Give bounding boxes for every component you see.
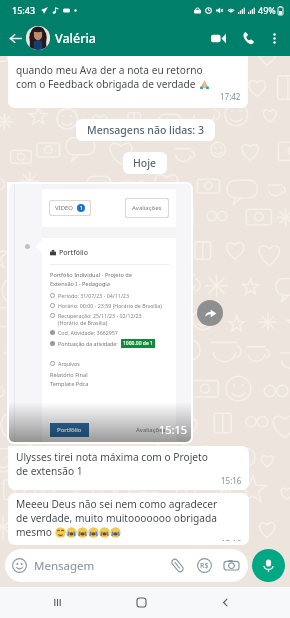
other: Camera (224, 558, 239, 573)
button[interactable]: Forward (197, 300, 223, 326)
button[interactable]: Ulysses tirei nota máxima com o Projeto … (8, 446, 249, 490)
staticText: Mensagem (34, 558, 95, 574)
staticText: 1 (80, 205, 83, 212)
staticText: Portfólio (59, 248, 89, 258)
staticText: Ulysses tirei nota máxima com o Projeto … (16, 450, 208, 478)
button[interactable]: quando meu Ava der a nota eu retorno (8, 56, 248, 108)
staticText: Período: 31/07/23 - 04/11/23 (58, 292, 129, 299)
other: Emoji (12, 558, 27, 573)
staticText: 15:15 (159, 422, 188, 437)
staticText: 1000.00 de 1 (123, 340, 153, 347)
staticText: VÍDEO (55, 204, 74, 212)
button[interactable]: Video call (205, 25, 231, 51)
staticText: Relatório Final Template Pdca (50, 371, 89, 387)
other: Payment (197, 558, 212, 573)
staticText: Cod. Atividade: 3662957 (58, 329, 118, 336)
staticText: Mensagens não lidas: 3 (87, 123, 204, 137)
staticText: Avaliações (132, 204, 162, 212)
staticText: 49% (258, 4, 276, 16)
button[interactable]: VÍDEO (7, 182, 193, 444)
button[interactable]: Back (4, 27, 26, 49)
staticText: com o Feedback obrigada de verdade (16, 77, 199, 91)
staticText: 15:16 (221, 538, 242, 541)
staticText: Pontuação da atividade: (58, 340, 118, 347)
button[interactable]: Hoje (123, 152, 167, 174)
staticText: 17:42 (220, 91, 241, 101)
button[interactable]: Home (123, 587, 159, 618)
button[interactable]: More options (263, 27, 285, 49)
button[interactable]: Back (207, 587, 243, 618)
staticText: quando meu Ava der a nota eu retorno (16, 63, 203, 77)
staticText: Horário: 00:00 - 23:59 (Horário de Brasí… (58, 302, 162, 309)
staticText: 15:43 (12, 4, 36, 16)
staticText: Recuperação: 25/11/23 - 02/12/23 (Horári… (58, 312, 142, 326)
button[interactable]: Voice message (252, 549, 285, 582)
staticText: Hoje (133, 156, 157, 170)
staticText: Valéria (55, 30, 96, 47)
staticText: Avaliações (136, 426, 166, 434)
button[interactable]: Meeeu Deus não sei nem como agradecer de… (8, 493, 249, 545)
staticText: 15:16 (221, 475, 242, 484)
staticText: Arquivos (58, 360, 80, 367)
staticText: Portfólio Individual - Projeto de Extens… (50, 271, 132, 287)
button[interactable]: Recents (39, 587, 75, 618)
staticText: Portfólio (57, 426, 82, 434)
button[interactable]: Voice call (235, 25, 261, 51)
staticText: R$ (200, 561, 209, 571)
staticText: mesmo (16, 525, 55, 539)
staticText: Meeeu Deus não sei nem como agradecer de… (16, 497, 218, 525)
button[interactable]: Emoji (5, 549, 248, 582)
button[interactable]: Mensagens não lidas: 3 (76, 119, 215, 141)
other: Attach (170, 558, 185, 573)
